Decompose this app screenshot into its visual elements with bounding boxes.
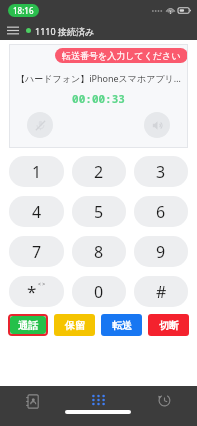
staticText: 1110 接続済み bbox=[35, 25, 95, 37]
button[interactable]: Speaker bbox=[144, 112, 170, 138]
staticText: 転送 bbox=[112, 319, 132, 332]
staticText: 1 bbox=[32, 161, 42, 183]
staticText: 【ハードフォン】iPhoneスマホアプリ… bbox=[9, 72, 188, 84]
staticText: 保留 bbox=[65, 319, 85, 332]
button[interactable]: 3 bbox=[134, 156, 188, 187]
button[interactable]: 5 bbox=[72, 196, 126, 227]
button[interactable]: History bbox=[131, 386, 197, 426]
staticText: 8 bbox=[94, 241, 104, 263]
button[interactable]: 転送 bbox=[101, 314, 142, 336]
button[interactable]: 9 bbox=[134, 236, 188, 267]
staticText: 通話 bbox=[18, 319, 38, 332]
button[interactable]: 7 bbox=[9, 236, 64, 267]
staticText: * bbox=[27, 280, 37, 303]
staticText: 18:16 bbox=[13, 5, 34, 16]
staticText: 3 bbox=[156, 161, 166, 183]
staticText: 切断 bbox=[159, 319, 179, 332]
button[interactable]: * bbox=[9, 276, 64, 307]
staticText: 7 bbox=[32, 241, 42, 263]
staticText: 転送番号を入力してください bbox=[62, 50, 181, 61]
button[interactable]: 通話 bbox=[10, 316, 46, 334]
button[interactable]: 8 bbox=[72, 236, 126, 267]
staticText: < > bbox=[38, 281, 46, 288]
button[interactable]: Keypad bbox=[65, 386, 131, 426]
button[interactable]: 0 bbox=[72, 276, 126, 307]
button[interactable]: 切断 bbox=[148, 314, 189, 336]
staticText: # bbox=[156, 281, 167, 303]
staticText: 5 bbox=[94, 201, 104, 223]
button[interactable]: 保留 bbox=[54, 314, 95, 336]
staticText: 2 bbox=[94, 161, 104, 183]
staticText: 4 bbox=[32, 201, 42, 223]
button[interactable]: 6 bbox=[134, 196, 188, 227]
button[interactable]: 2 bbox=[72, 156, 126, 187]
button[interactable]: Contacts bbox=[0, 386, 65, 426]
button[interactable]: Menu bbox=[0, 21, 26, 40]
button[interactable]: 4 bbox=[9, 196, 64, 227]
staticText: 0 bbox=[94, 281, 104, 303]
staticText: 00:00:33 bbox=[9, 91, 188, 106]
button[interactable]: 1 bbox=[9, 156, 64, 187]
staticText: 9 bbox=[156, 241, 166, 263]
button[interactable]: # bbox=[134, 276, 188, 307]
button[interactable]: Mute bbox=[27, 112, 53, 138]
staticText: 6 bbox=[156, 201, 166, 223]
